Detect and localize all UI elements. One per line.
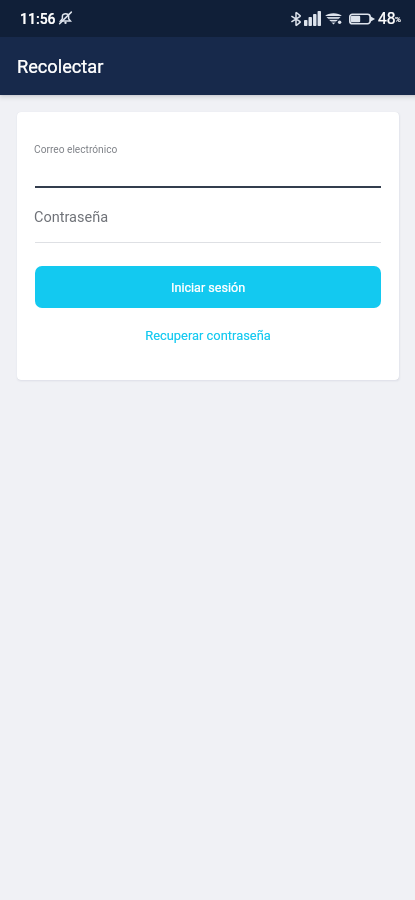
staticText: 48 [378,10,396,28]
other: Ringer off [59,11,72,25]
button[interactable]: Correo electrónico [35,136,381,188]
other: Bluetooth [291,12,301,26]
other: Mobile signal [304,11,321,26]
button[interactable]: Recuperar contraseña [17,320,399,350]
staticText: Recuperar contraseña [145,328,271,343]
button[interactable]: Iniciar sesión [35,266,381,308]
staticText: % [395,15,401,24]
button[interactable]: Contraseña [35,202,381,243]
other: Battery 48 percent [349,12,375,26]
staticText: Iniciar sesión [171,280,246,295]
staticText: Contraseña [34,209,109,226]
staticText: Recolectar [17,56,104,77]
other: Wi-Fi [325,11,342,25]
staticText: 11:56 [20,11,56,27]
staticText: Correo electrónico [34,144,118,156]
